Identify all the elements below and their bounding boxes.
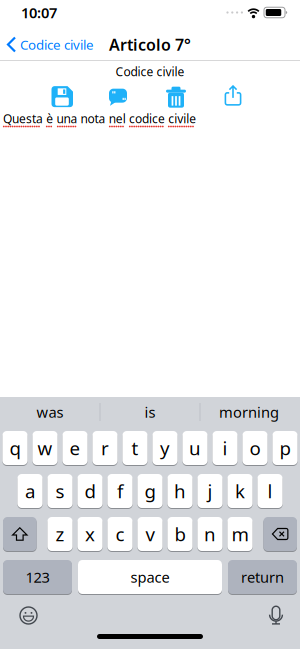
staticText: k — [235, 479, 245, 503]
button[interactable]: w — [32, 431, 58, 465]
staticText: s — [55, 479, 64, 503]
button[interactable]: j — [197, 474, 223, 508]
staticText: Questa — [3, 111, 43, 126]
staticText: 10:07 — [21, 3, 57, 22]
button[interactable]: f — [107, 474, 133, 508]
button[interactable]: i — [212, 431, 238, 465]
staticText: t — [131, 436, 138, 460]
button[interactable]: was — [0, 397, 99, 427]
staticText: v — [145, 522, 154, 546]
button[interactable]: u — [182, 431, 208, 465]
button[interactable]: z — [47, 517, 73, 551]
button[interactable]: g — [137, 474, 163, 508]
button[interactable]: b — [167, 517, 193, 551]
button[interactable]: Delete — [263, 517, 297, 551]
button[interactable]: x — [77, 517, 103, 551]
staticText: return — [241, 567, 284, 587]
staticText: i — [222, 436, 227, 460]
button[interactable]: l — [257, 474, 283, 508]
button[interactable]: h — [167, 474, 193, 508]
button[interactable]: o — [242, 431, 268, 465]
button[interactable]: Delete — [166, 86, 186, 108]
button[interactable]: c — [107, 517, 133, 551]
staticText: e — [69, 436, 80, 460]
button[interactable]: is — [100, 397, 199, 427]
staticText: Codice civile — [115, 64, 184, 80]
staticText: nota — [81, 111, 106, 126]
staticText: h — [174, 479, 186, 503]
staticText: space — [130, 567, 169, 587]
staticText: d — [84, 479, 95, 503]
staticText: is — [144, 402, 155, 422]
staticText: a — [25, 479, 35, 503]
staticText: f — [117, 479, 123, 503]
staticText: w — [37, 436, 52, 460]
button[interactable]: morning — [199, 397, 298, 427]
staticText: q — [9, 436, 20, 460]
button[interactable]: Save — [51, 86, 72, 107]
staticText: n — [204, 522, 216, 546]
staticText: c — [115, 522, 124, 546]
button[interactable]: k — [227, 474, 253, 508]
button[interactable]: n — [197, 517, 223, 551]
staticText: u — [189, 436, 201, 460]
button[interactable]: Quote — [106, 86, 130, 108]
button[interactable]: q — [2, 431, 28, 465]
button[interactable]: y — [152, 431, 178, 465]
staticText: m — [231, 522, 248, 546]
button[interactable]: v — [137, 517, 163, 551]
button[interactable]: p — [272, 431, 298, 465]
button[interactable]: Codice civile — [0, 36, 94, 53]
button[interactable]: Dictate — [268, 605, 284, 624]
staticText: x — [85, 522, 95, 546]
button[interactable]: t — [122, 431, 148, 465]
staticText: l — [267, 479, 272, 503]
button[interactable]: return — [228, 560, 297, 594]
button[interactable]: Emoji — [19, 606, 36, 623]
button[interactable]: Share — [223, 85, 243, 107]
staticText: civile — [168, 111, 196, 126]
staticText: Codice civile — [20, 36, 94, 53]
staticText: p — [279, 436, 290, 460]
button[interactable]: r — [92, 431, 118, 465]
staticText: z — [55, 522, 64, 546]
staticText: j — [207, 479, 212, 503]
button[interactable]: space — [78, 560, 222, 594]
staticText: nel — [109, 111, 126, 126]
staticText: 123 — [25, 567, 49, 587]
staticText: was — [36, 402, 63, 422]
staticText: codice — [129, 111, 165, 126]
staticText: Articolo 7° — [109, 34, 191, 55]
button[interactable]: m — [227, 517, 253, 551]
staticText: o — [249, 436, 260, 460]
staticText: y — [160, 436, 170, 460]
button[interactable]: a — [17, 474, 43, 508]
staticText: una — [56, 111, 77, 126]
staticText: morning — [219, 402, 279, 422]
staticText: b — [174, 522, 185, 546]
staticText: g — [144, 479, 155, 503]
button[interactable]: Shift — [3, 517, 37, 551]
staticText: r — [101, 436, 109, 460]
button[interactable]: Numbers — [3, 560, 72, 594]
staticText: è — [46, 111, 53, 126]
button[interactable]: e — [62, 431, 88, 465]
button[interactable]: d — [77, 474, 103, 508]
button[interactable]: s — [47, 474, 73, 508]
